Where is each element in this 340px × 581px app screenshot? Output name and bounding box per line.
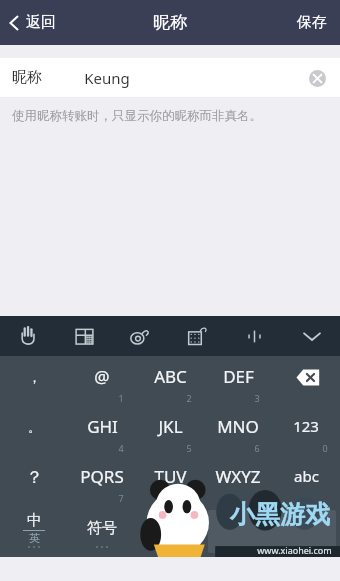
staticText: 2: [186, 392, 192, 404]
button[interactable]: Chinese English toggle: [0, 506, 68, 557]
staticText: ？: [26, 467, 43, 488]
staticText: 5: [186, 442, 192, 454]
button[interactable]: PQRS: [68, 456, 136, 506]
staticText: 3: [254, 392, 260, 404]
button[interactable]: 符号: [68, 506, 136, 557]
staticText: 返回: [26, 13, 56, 32]
button[interactable]: @: [68, 356, 136, 406]
button[interactable]: Weibo: [112, 316, 169, 356]
button[interactable]: 123: [272, 406, 340, 456]
staticText: 4: [118, 442, 124, 454]
button[interactable]: Clear text: [303, 64, 331, 92]
button[interactable]: 返回: [0, 6, 68, 39]
staticText: 1: [118, 392, 124, 404]
button[interactable]: ABC: [136, 356, 204, 406]
staticText: Keung: [84, 68, 130, 88]
button[interactable]: MNO: [204, 406, 272, 456]
staticText: 英: [29, 531, 40, 545]
staticText: 保存: [297, 13, 327, 32]
staticText: 使用昵称转账时，只显示你的昵称而非真名。: [12, 108, 262, 124]
staticText: ABC: [154, 365, 187, 388]
button[interactable]: GHI: [68, 406, 136, 456]
button[interactable]: ，: [136, 506, 204, 557]
button[interactable]: abc: [272, 456, 340, 506]
button[interactable]: ？: [0, 456, 68, 506]
button[interactable]: Cursor control: [226, 316, 283, 356]
button[interactable]: Space: [208, 510, 336, 553]
staticText: GHI: [87, 415, 118, 438]
button[interactable]: Switch keypad: [169, 316, 226, 356]
button[interactable]: Keyboard layout: [56, 316, 112, 356]
staticText: 9: [254, 492, 260, 504]
staticText: 6: [254, 442, 260, 454]
staticText: abc: [294, 466, 319, 486]
staticText: DEF: [223, 365, 254, 388]
staticText: 昵称: [12, 68, 42, 87]
staticText: MNO: [217, 415, 259, 438]
staticText: 7: [118, 492, 124, 504]
staticText: WXYZ: [215, 465, 261, 488]
button[interactable]: WXYZ: [204, 456, 272, 506]
staticText: @: [94, 365, 110, 388]
button[interactable]: 。: [0, 406, 68, 456]
button[interactable]: 保存: [284, 4, 340, 41]
button[interactable]: Backspace: [272, 356, 340, 406]
staticText: TUV: [154, 465, 187, 488]
button[interactable]: ，: [0, 356, 68, 406]
button[interactable]: DEF: [204, 356, 272, 406]
staticText: 。: [28, 419, 41, 435]
staticText: 8: [186, 492, 192, 504]
button[interactable]: TUV: [136, 456, 204, 506]
button[interactable]: JKL: [136, 406, 204, 456]
button[interactable]: Handwriting input: [0, 316, 56, 356]
staticText: JKL: [158, 415, 183, 438]
staticText: 123: [293, 416, 319, 436]
staticText: 符号: [87, 519, 117, 538]
staticText: 小黑游戏: [230, 499, 330, 530]
staticText: 中: [27, 511, 42, 530]
staticText: 昵称: [153, 12, 187, 33]
staticText: PQRS: [80, 465, 124, 488]
staticText: 0: [322, 442, 328, 454]
staticText: www.xiaohei.com: [257, 544, 332, 556]
staticText: ，: [28, 369, 41, 385]
button[interactable]: 昵称: [0, 58, 340, 97]
button[interactable]: Hide keyboard: [283, 316, 340, 356]
